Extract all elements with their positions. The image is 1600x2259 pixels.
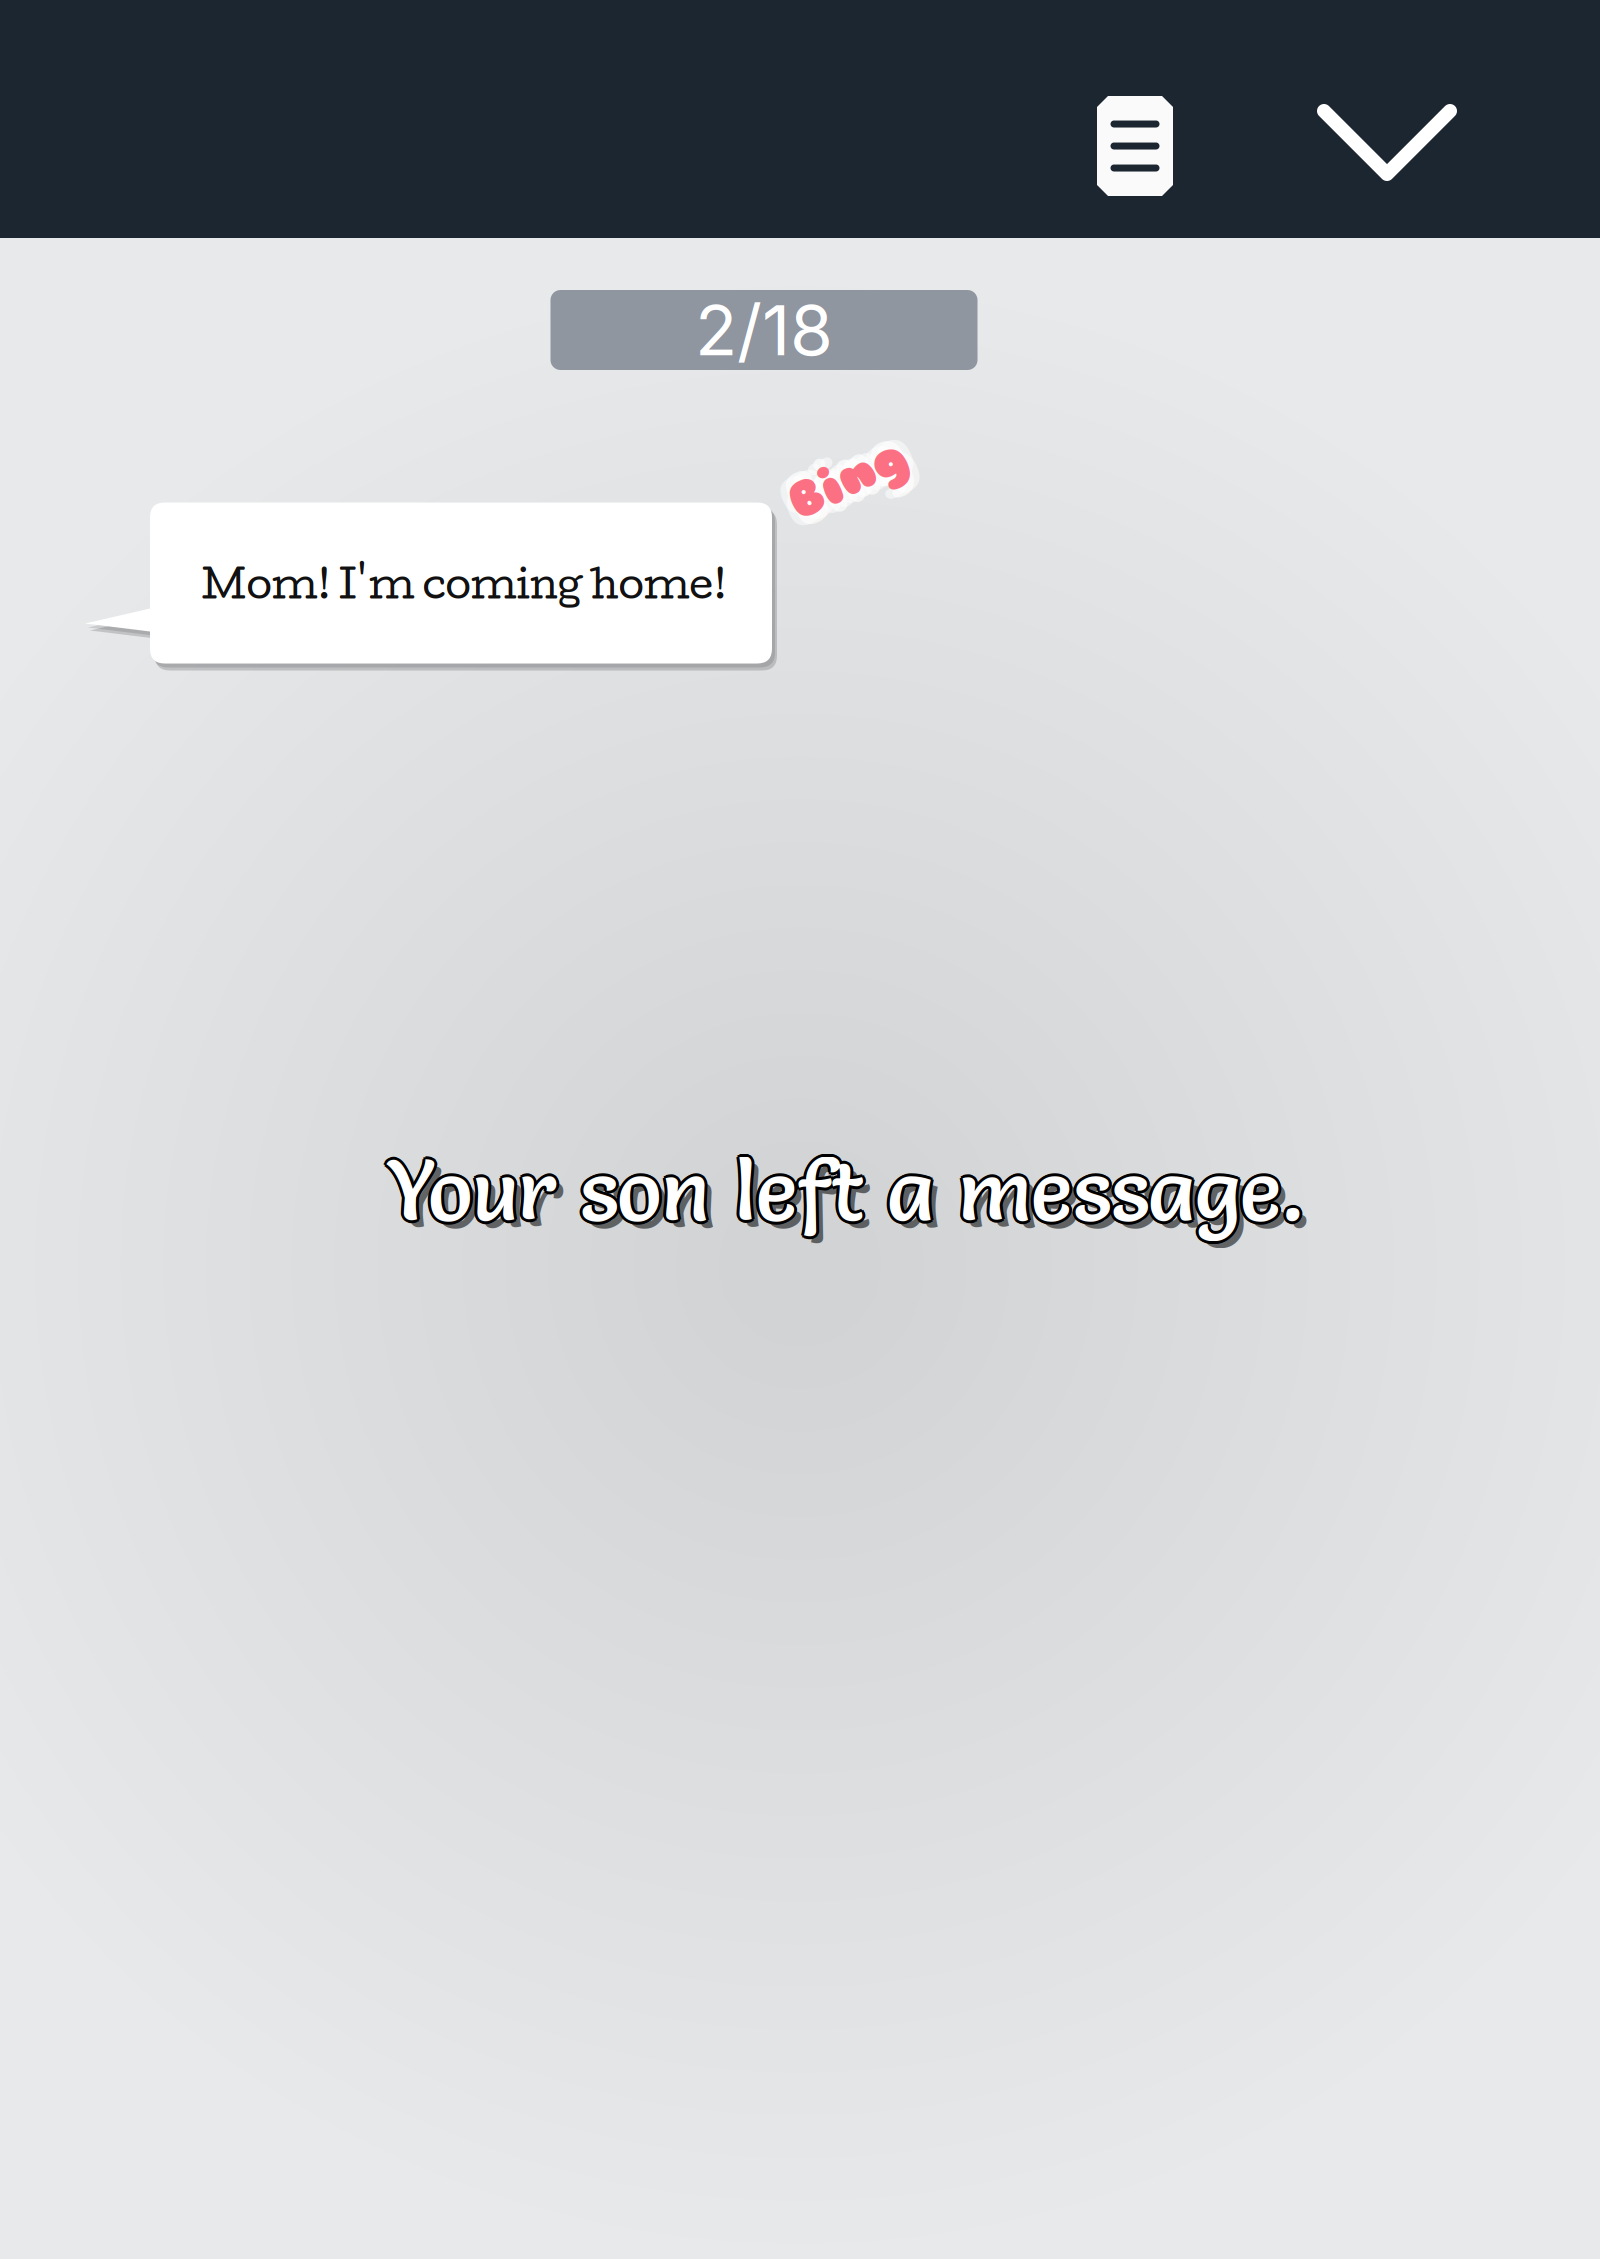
- button[interactable]: Script: [1067, 66, 1203, 226]
- button[interactable]: 2/18: [550, 290, 977, 370]
- staticText: Bing: [785, 456, 909, 520]
- staticText: 2/18: [695, 288, 833, 372]
- staticText: Bing: [778, 454, 902, 518]
- button[interactable]: Collapse: [1287, 74, 1487, 212]
- staticText: Your son left a message.: [388, 1140, 1306, 1243]
- staticText: Your son left a message.: [384, 1136, 1302, 1239]
- staticText: Your son left a message.: [386, 1135, 1304, 1238]
- staticText: Bing: [792, 440, 916, 504]
- staticText: Your son left a message.: [393, 1145, 1311, 1248]
- staticText: Bing: [792, 454, 916, 518]
- staticText: Mom! I'm coming home!: [201, 559, 726, 607]
- staticText: Bing: [785, 438, 909, 502]
- staticText: Your son left a message.: [389, 1138, 1307, 1241]
- staticText: Your son left a message.: [388, 1136, 1306, 1239]
- staticText: Your son left a message.: [386, 1141, 1304, 1244]
- staticText: Your son left a message.: [384, 1140, 1302, 1243]
- staticText: Bing: [785, 447, 909, 511]
- staticText: Your son left a message.: [386, 1138, 1304, 1241]
- staticText: Bing: [778, 440, 902, 504]
- staticText: Your son left a message.: [383, 1138, 1301, 1241]
